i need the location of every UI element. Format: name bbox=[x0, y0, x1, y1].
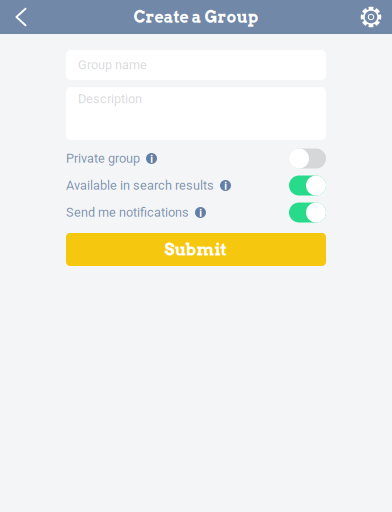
button[interactable]: Send me notifications bbox=[66, 199, 326, 226]
staticText: Send me notifications bbox=[66, 205, 189, 220]
button[interactable]: Submit bbox=[66, 233, 326, 266]
staticText: Create a Group bbox=[133, 7, 258, 27]
staticText: Available in search results bbox=[66, 178, 214, 193]
staticText: Private group bbox=[66, 151, 140, 166]
staticText: Submit bbox=[164, 239, 227, 259]
staticText: i bbox=[150, 151, 153, 166]
button[interactable]: Available in search results bbox=[66, 172, 326, 199]
button[interactable]: Back bbox=[0, 0, 42, 34]
staticText: i bbox=[224, 178, 227, 193]
staticText: Group name bbox=[78, 58, 147, 72]
button[interactable]: Private group bbox=[66, 145, 326, 172]
staticText: Description bbox=[78, 92, 142, 106]
staticText: i bbox=[199, 205, 202, 220]
button[interactable]: Settings bbox=[350, 0, 392, 34]
